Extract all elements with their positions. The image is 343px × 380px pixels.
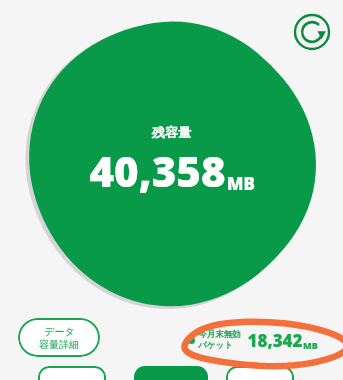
staticText: パケット: [198, 340, 233, 351]
button[interactable]: Menu item 3: [226, 366, 294, 380]
staticText: 残容量: [152, 124, 191, 140]
staticText: MB: [303, 339, 318, 351]
staticText: 今月末無効: [198, 329, 241, 340]
button[interactable]: Menu item 2: [134, 366, 208, 380]
staticText: 容量詳細: [39, 338, 79, 351]
button[interactable]: データ: [18, 318, 100, 357]
staticText: 18,342: [247, 329, 303, 352]
staticText: データ: [44, 325, 75, 338]
staticText: 40,358: [89, 142, 226, 199]
staticText: MB: [227, 172, 255, 195]
button[interactable]: Refresh: [293, 13, 331, 51]
button[interactable]: Menu item 1: [38, 366, 106, 380]
button[interactable]: 今月末無効: [188, 325, 318, 355]
